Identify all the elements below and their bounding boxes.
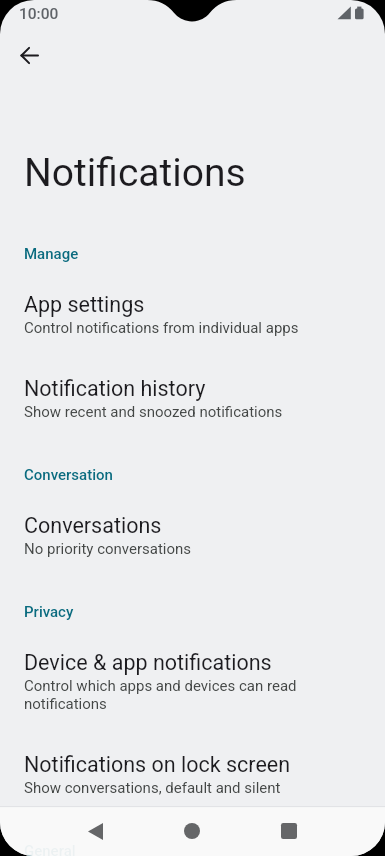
button[interactable]: Conversations [0, 513, 385, 558]
staticText: Show conversations, default and silent [24, 779, 281, 797]
staticText: Control notifications from individual ap… [24, 319, 299, 337]
button[interactable]: Recents [260, 806, 318, 856]
staticText: 10:00 [19, 5, 59, 23]
staticText: Notifications on lock screen [24, 752, 291, 777]
button[interactable]: Back [66, 806, 124, 856]
staticText: No priority conversations [24, 540, 192, 558]
staticText: Control which apps and devices can read … [24, 677, 323, 713]
button[interactable]: Notification history [0, 376, 385, 421]
staticText: Manage [24, 245, 79, 263]
staticText: General [24, 842, 76, 856]
staticText: Device & app notifications [24, 650, 272, 675]
button[interactable]: Device & app notifications [0, 650, 385, 713]
button[interactable]: App settings [0, 292, 385, 337]
button[interactable]: Home [163, 806, 221, 856]
staticText: App settings [24, 292, 145, 317]
button[interactable]: Notifications on lock screen [0, 752, 385, 797]
button[interactable]: Back [2, 26, 58, 82]
staticText: Conversation [24, 466, 113, 484]
staticText: Show recent and snoozed notifications [24, 403, 283, 421]
staticText: Privacy [24, 603, 74, 621]
staticText: Notification history [24, 376, 206, 401]
staticText: Notifications [24, 150, 246, 196]
staticText: Conversations [24, 513, 162, 538]
